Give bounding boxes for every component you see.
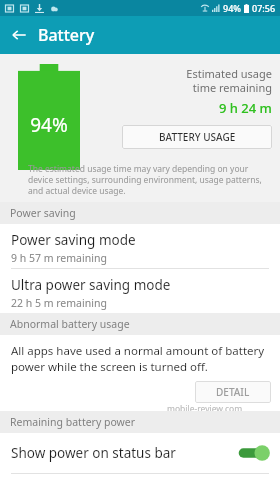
button[interactable]: DETAIL	[195, 381, 271, 403]
staticText: BATTERY USAGE	[159, 130, 236, 144]
staticText: mobile-review.com	[167, 403, 243, 411]
button[interactable]: Ultra power saving mode	[0, 269, 280, 313]
staticText: 9 h 57 m remaining	[11, 251, 107, 265]
staticText: 94%	[18, 112, 80, 138]
staticText: Abnormal battery usage	[10, 317, 130, 331]
button[interactable]: Back	[0, 16, 38, 54]
staticText: DETAIL	[216, 385, 250, 399]
staticText: 22 h 5 m remaining	[11, 296, 107, 310]
staticText: Ultra power saving mode	[11, 276, 171, 294]
staticText: Power saving mode	[11, 231, 136, 249]
staticText: The estimated usage time may vary depend…	[28, 163, 268, 196]
staticText: Battery	[38, 24, 95, 46]
button[interactable]: BATTERY USAGE	[122, 125, 272, 149]
staticText: 07:56	[252, 2, 276, 14]
button[interactable]: Power saving mode	[0, 224, 280, 268]
staticText: 9 h 24 m	[219, 99, 272, 117]
staticText: All apps have used a normal amount of ba…	[11, 343, 272, 374]
staticText: Power saving	[10, 206, 76, 220]
staticText: 94%	[223, 2, 241, 14]
staticText: Estimated usage time remaining	[186, 66, 272, 95]
staticText: Show power on status bar	[11, 444, 237, 462]
button[interactable]: Show power on status bar	[0, 433, 280, 473]
staticText: Remaining battery power	[10, 415, 136, 429]
